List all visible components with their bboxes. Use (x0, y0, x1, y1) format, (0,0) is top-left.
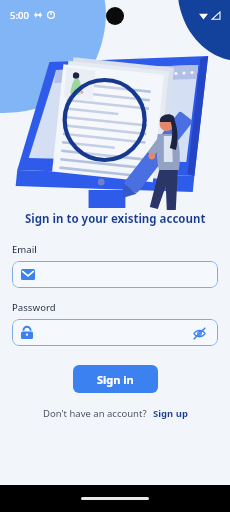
button[interactable]: Show password (12, 319, 218, 346)
button[interactable]: Sign up (153, 407, 188, 420)
staticText: Sign up (153, 407, 188, 420)
button[interactable] (12, 261, 218, 288)
button[interactable]: Show password (189, 323, 209, 343)
staticText: 5:00 (10, 9, 29, 22)
staticText: Don't have an account? (43, 407, 147, 420)
staticText: Password (12, 301, 56, 314)
staticText: Sign in to your existing account (25, 211, 206, 227)
staticText: Sign in (97, 372, 134, 387)
staticText: Email (12, 243, 37, 256)
button[interactable]: Sign in (73, 365, 158, 393)
